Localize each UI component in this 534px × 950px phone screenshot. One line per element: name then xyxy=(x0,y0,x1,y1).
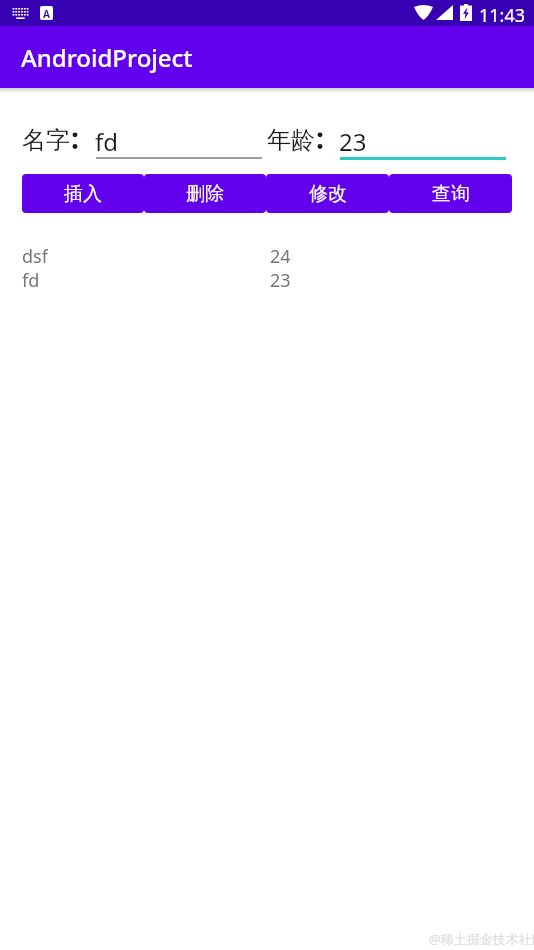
button[interactable]: Age input xyxy=(340,122,506,160)
staticText: AndroidProject xyxy=(21,41,193,74)
staticText: @稀土掘金技术社区 xyxy=(429,930,534,948)
staticText: 年龄 xyxy=(267,125,315,155)
other: Input language xyxy=(40,6,53,20)
other: Wi-Fi xyxy=(414,5,433,20)
staticText: 名字 xyxy=(22,125,70,155)
other: Keyboard xyxy=(12,8,29,19)
staticText: 23 xyxy=(270,268,291,292)
button[interactable]: Name input xyxy=(96,122,262,160)
staticText: fd xyxy=(22,268,40,292)
staticText: 23 xyxy=(339,125,367,158)
staticText: 查询 xyxy=(432,182,470,206)
button[interactable]: 修改 xyxy=(266,174,389,213)
staticText: 修改 xyxy=(309,182,347,206)
other: Signal xyxy=(436,5,453,20)
staticText: fd xyxy=(95,125,119,158)
button[interactable]: 查询 xyxy=(389,174,512,213)
button[interactable]: 插入 xyxy=(22,174,144,213)
other: Battery xyxy=(460,4,472,21)
staticText: 删除 xyxy=(186,182,224,206)
staticText: 11:43 xyxy=(479,3,526,28)
staticText: 插入 xyxy=(64,182,102,206)
staticText: dsf xyxy=(22,244,48,268)
button[interactable]: fd xyxy=(0,268,534,292)
staticText: 24 xyxy=(270,244,291,268)
button[interactable]: 删除 xyxy=(144,174,266,213)
staticText: A xyxy=(43,7,50,20)
button[interactable]: dsf xyxy=(0,244,534,268)
